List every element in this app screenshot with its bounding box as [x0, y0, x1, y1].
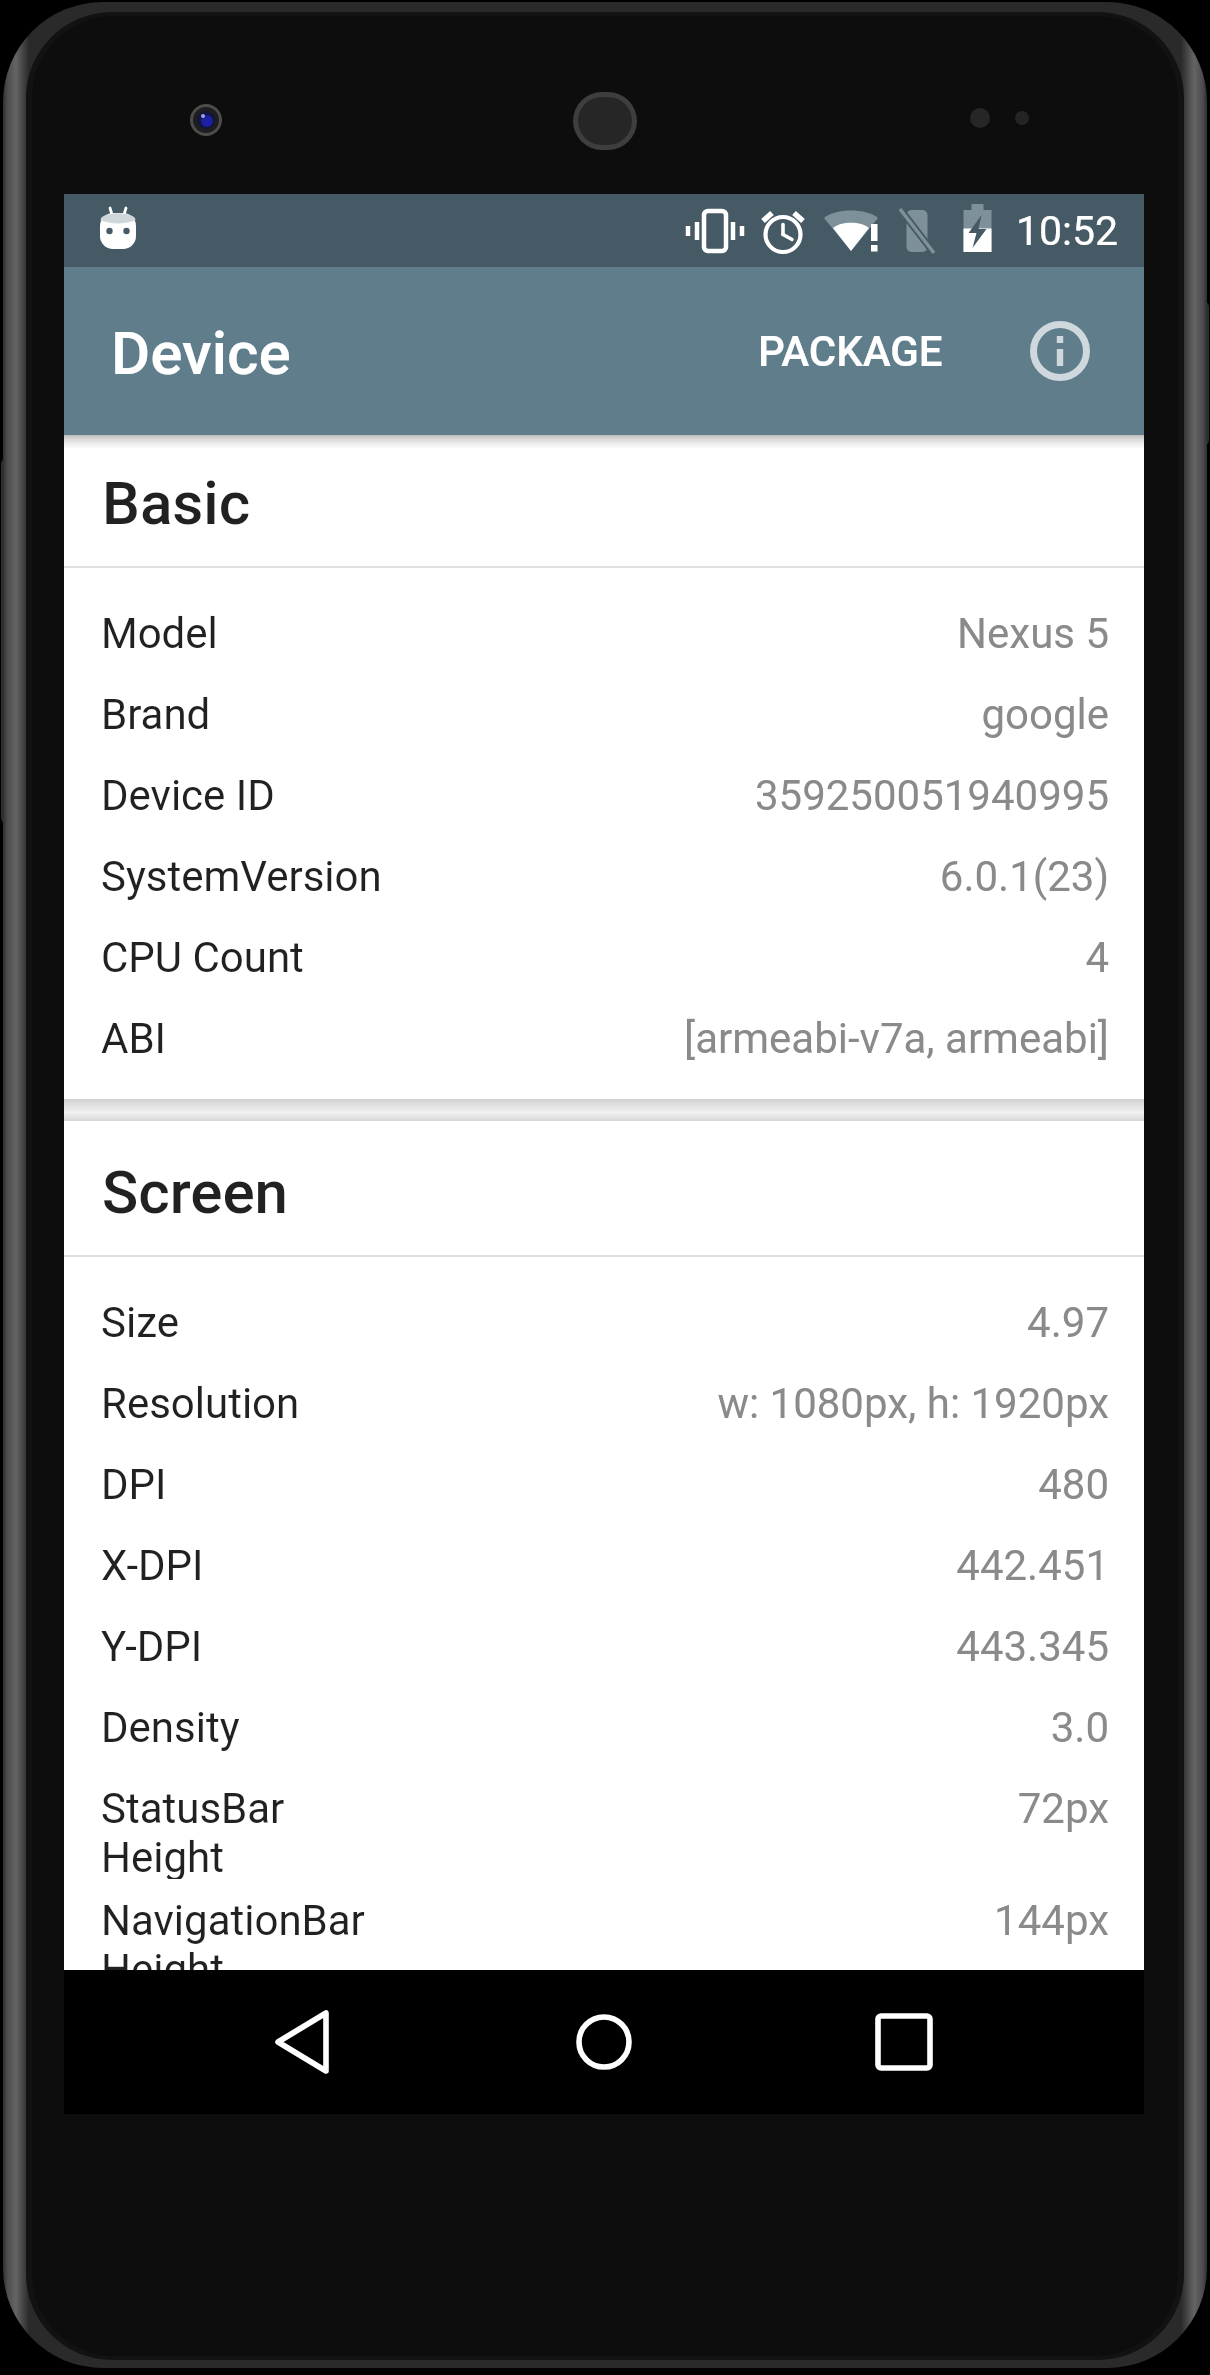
staticText: CPU Count	[101, 933, 1085, 982]
staticText: Basic	[102, 468, 251, 538]
button[interactable]: Recent apps	[832, 1970, 976, 2114]
staticText: 10:52	[1016, 207, 1119, 255]
staticText: StatusBar Height	[101, 1784, 1017, 1879]
staticText: Size	[101, 1298, 1027, 1347]
staticText: Device	[111, 318, 291, 388]
staticText: google	[981, 690, 1109, 739]
button[interactable]: Density	[64, 1686, 1144, 1767]
button[interactable]: SystemVersion	[64, 835, 1144, 916]
button[interactable]: ABI	[64, 997, 1144, 1078]
staticText: 443.345	[956, 1622, 1109, 1671]
staticText: Screen	[102, 1157, 288, 1227]
button[interactable]: StatusBar Height	[64, 1767, 1144, 1879]
button[interactable]: Model	[64, 592, 1144, 673]
staticText: PACKAGE	[758, 327, 943, 376]
staticText: Device ID	[101, 771, 754, 820]
button[interactable]: Size	[64, 1281, 1144, 1362]
staticText: 144px	[994, 1896, 1109, 1945]
button[interactable]: NavigationBar Height	[64, 1879, 1144, 1981]
button[interactable]: Device ID	[64, 754, 1144, 835]
button[interactable]: Brand	[64, 673, 1144, 754]
button[interactable]: DPI	[64, 1443, 1144, 1524]
staticText: 3.0	[1050, 1703, 1109, 1752]
staticText: 6.0.1(23)	[939, 852, 1109, 901]
button[interactable]: Back	[234, 1970, 378, 2114]
staticText: 442.451	[956, 1541, 1109, 1590]
button[interactable]: Y-DPI	[64, 1605, 1144, 1686]
staticText: Brand	[101, 690, 981, 739]
staticText: NavigationBar Height	[101, 1896, 994, 1981]
staticText: [armeabi-v7a, armeabi]	[683, 1014, 1109, 1063]
staticText: w: 1080px, h: 1920px	[717, 1379, 1109, 1428]
staticText: 4	[1085, 933, 1109, 982]
button[interactable]: Resolution	[64, 1362, 1144, 1443]
staticText: Resolution	[101, 1379, 717, 1428]
button[interactable]: Home	[532, 1970, 676, 2114]
button[interactable]: X-DPI	[64, 1524, 1144, 1605]
staticText: 359250051940995	[754, 771, 1109, 820]
button[interactable]: CPU Count	[64, 916, 1144, 997]
button[interactable]: Info	[1008, 299, 1112, 403]
staticText: Model	[101, 609, 957, 658]
staticText: 480	[1038, 1460, 1109, 1509]
staticText: DPI	[101, 1460, 1038, 1509]
staticText: 72px	[1017, 1784, 1109, 1833]
staticText: ABI	[101, 1014, 683, 1063]
staticText: X-DPI	[101, 1541, 956, 1590]
staticText: SystemVersion	[101, 852, 939, 901]
button[interactable]: PACKAGE	[734, 287, 967, 416]
staticText: 4.97	[1027, 1298, 1109, 1347]
staticText: Y-DPI	[101, 1622, 956, 1671]
staticText: Nexus 5	[957, 609, 1109, 658]
staticText: Density	[101, 1703, 1050, 1752]
